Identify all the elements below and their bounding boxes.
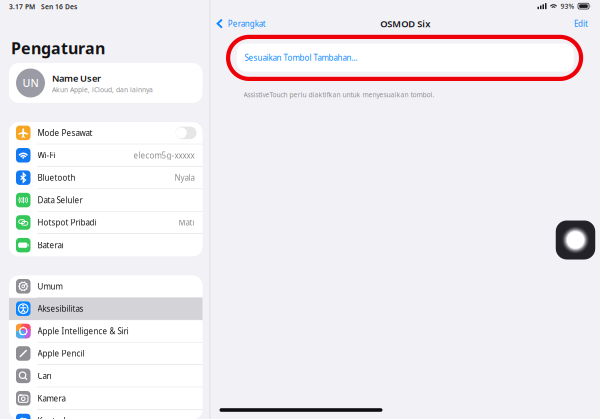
staticText: Cari bbox=[37, 371, 51, 381]
staticText: Edit bbox=[574, 18, 588, 29]
button[interactable]: Edit bbox=[574, 18, 588, 29]
button[interactable]: Bluetooth bbox=[9, 167, 202, 189]
staticText: Bluetooth bbox=[37, 172, 75, 183]
staticText: UN bbox=[22, 76, 38, 90]
button[interactable]: Sesuaikan Tombol Tambahan... bbox=[237, 44, 574, 72]
button[interactable]: Mode Pesawat bbox=[9, 122, 202, 144]
staticText: Pengaturan bbox=[11, 37, 105, 59]
staticText: Nyala bbox=[174, 172, 194, 183]
staticText: Wi-Fi bbox=[37, 150, 55, 161]
staticText: Baterai bbox=[37, 240, 63, 250]
staticText: Sen 16 Des bbox=[41, 2, 77, 11]
staticText: Mode Pesawat bbox=[37, 128, 92, 138]
staticText: 93% bbox=[560, 2, 574, 11]
staticText: 3.17 PM bbox=[9, 2, 35, 11]
staticText: Perangkat bbox=[228, 18, 266, 29]
button[interactable]: Cari bbox=[9, 365, 202, 387]
button[interactable]: UN bbox=[9, 63, 202, 103]
button[interactable]: Apple Intelligence & Siri bbox=[9, 320, 202, 343]
staticText: Kamera bbox=[37, 393, 65, 404]
button[interactable]: Umum bbox=[9, 275, 202, 298]
button[interactable]: Data Seluler bbox=[9, 189, 202, 212]
button[interactable]: Kontrol bbox=[9, 410, 202, 419]
button[interactable]: Perangkat bbox=[217, 18, 266, 29]
staticText: Apple Intelligence & Siri bbox=[37, 326, 128, 336]
button[interactable]: Wi-Fi bbox=[9, 144, 202, 167]
staticText: OSMOD Six bbox=[380, 17, 430, 30]
staticText: Akun Apple, iCloud, dan lainnya bbox=[52, 85, 153, 94]
button[interactable]: AssistiveTouch bbox=[556, 220, 595, 259]
staticText: Kontrol bbox=[37, 416, 65, 419]
staticText: elecom5g-xxxxx bbox=[133, 150, 194, 161]
button[interactable]: Kamera bbox=[9, 387, 202, 410]
button[interactable]: Apple Pencil bbox=[9, 343, 202, 365]
staticText: Sesuaikan Tombol Tambahan... bbox=[244, 52, 357, 63]
button[interactable]: Baterai bbox=[9, 234, 202, 256]
button[interactable]: Aksesibilitas bbox=[9, 298, 202, 320]
staticText: Data Seluler bbox=[37, 195, 82, 205]
staticText: Hotspot Pribadi bbox=[37, 217, 96, 228]
staticText: AssistiveTouch perlu diaktifkan untuk me… bbox=[243, 90, 434, 99]
staticText: Mati bbox=[178, 217, 194, 228]
staticText: Umum bbox=[37, 281, 62, 292]
button[interactable]: Hotspot Pribadi bbox=[9, 212, 202, 234]
staticText: Name User bbox=[52, 72, 101, 84]
staticText: Apple Pencil bbox=[37, 348, 84, 359]
staticText: Aksesibilitas bbox=[37, 303, 83, 314]
